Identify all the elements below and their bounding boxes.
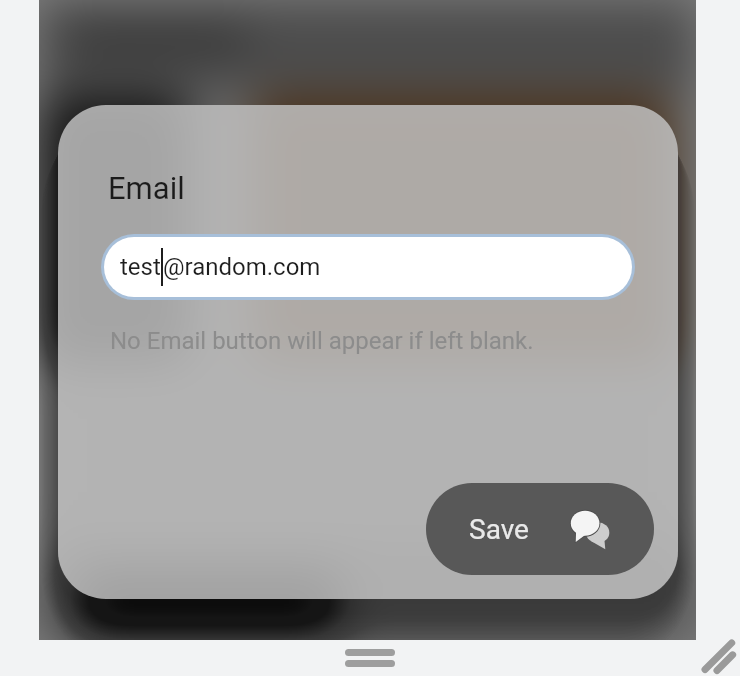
button[interactable]: Drag handle [339,643,401,673]
staticText: Email [108,170,185,206]
staticText: @random.com [163,253,321,281]
staticText: No Email button will appear if left blan… [110,327,534,355]
staticText: test [120,253,161,281]
staticText: Save [469,513,529,546]
button[interactable]: Save [426,483,654,575]
button[interactable]: Resize window [694,630,740,676]
button[interactable]: test [104,237,632,297]
